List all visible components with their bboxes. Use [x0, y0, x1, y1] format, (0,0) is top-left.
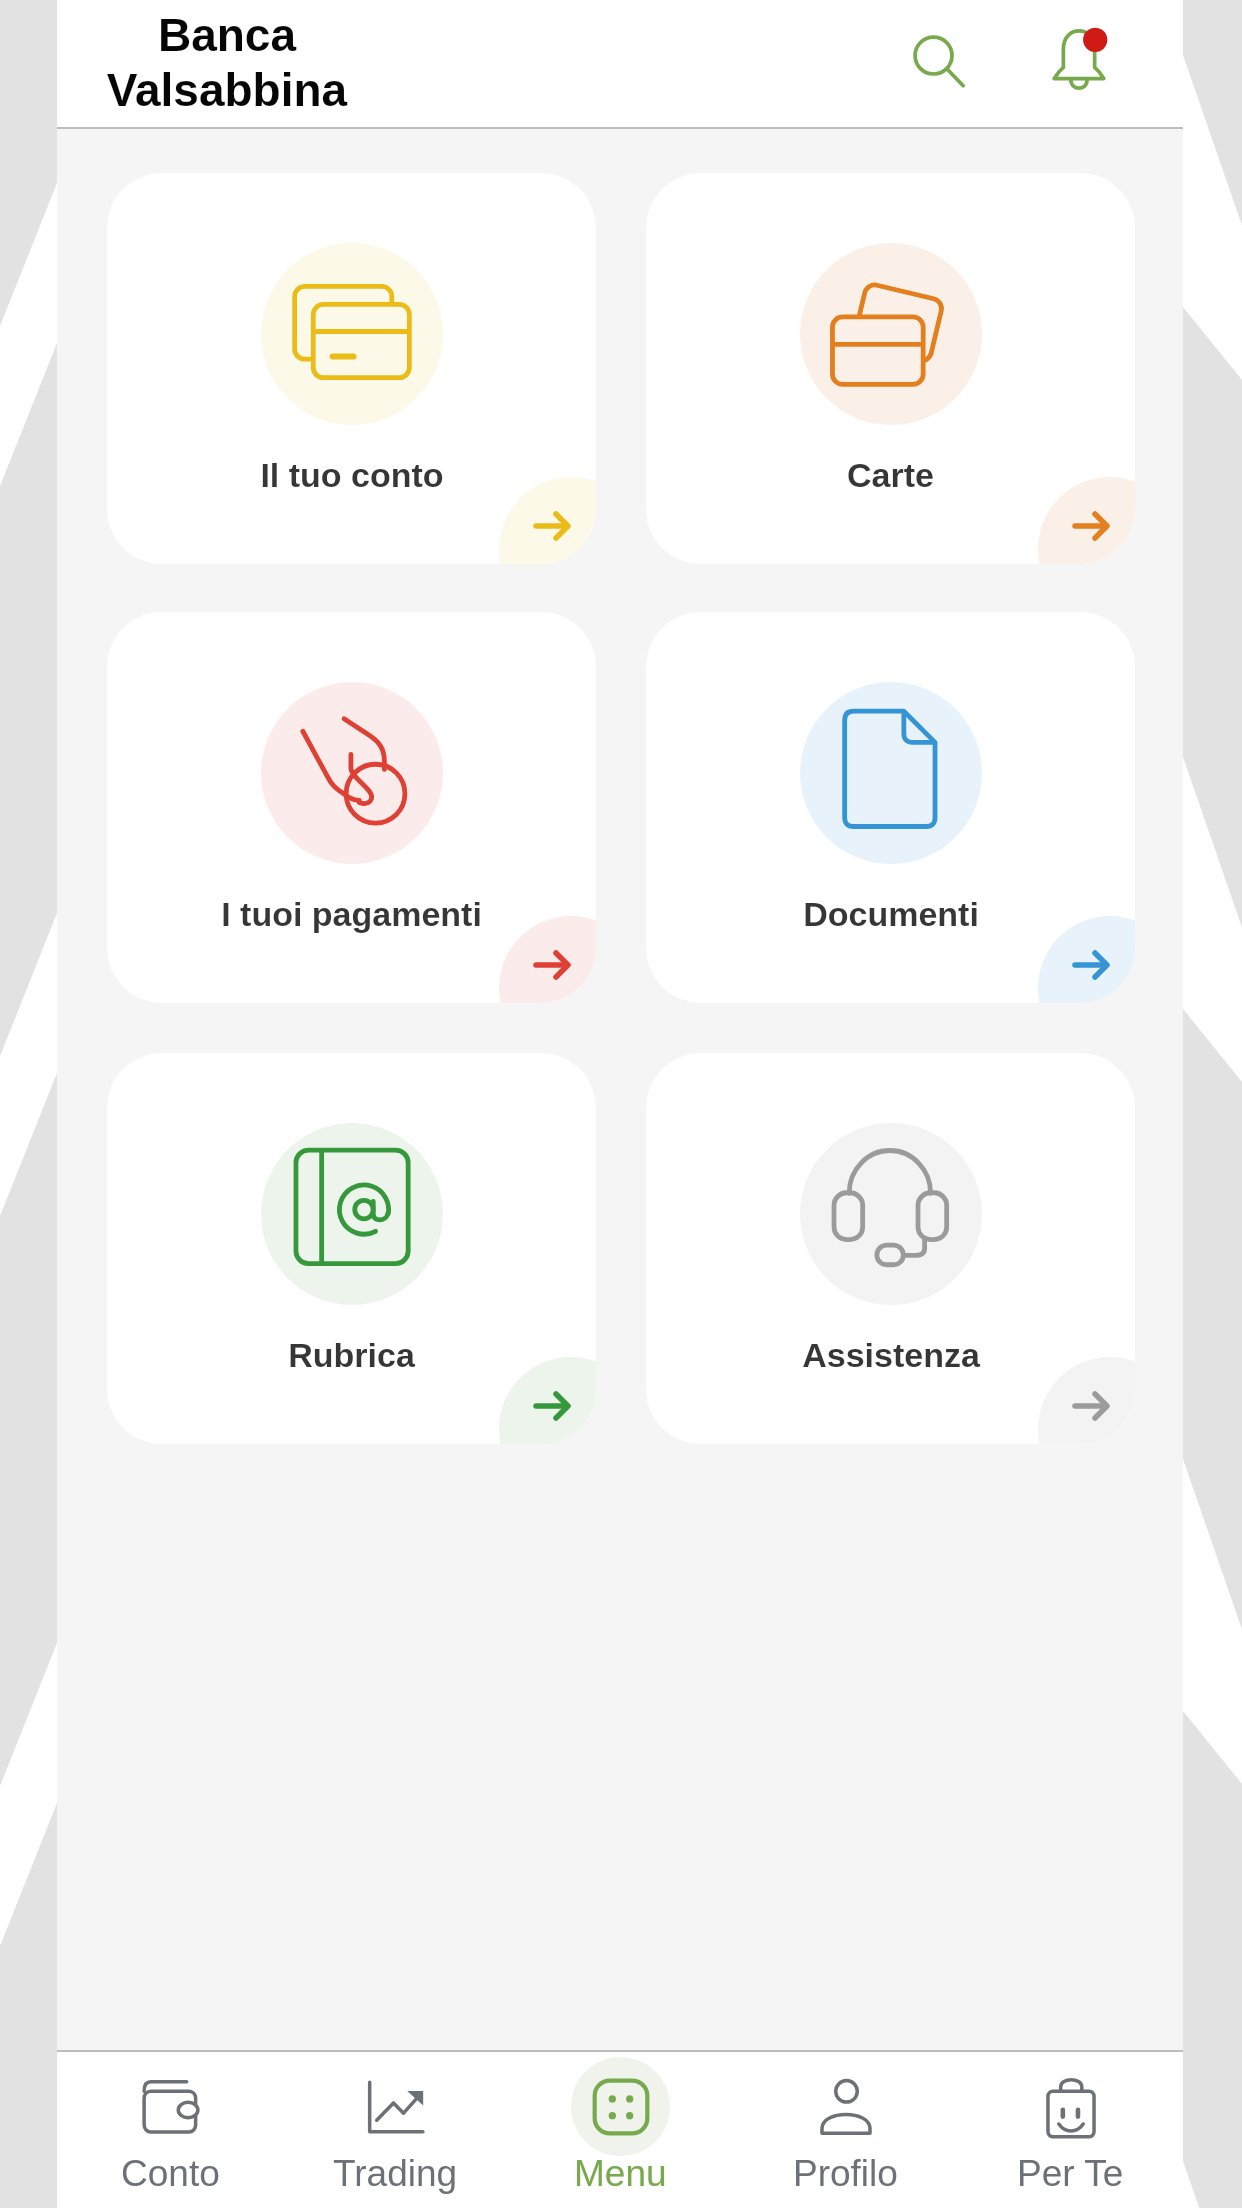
button[interactable]: Conto [57, 2052, 283, 2208]
staticText: Conto [121, 2153, 220, 2194]
button[interactable]: Profilo [733, 2052, 958, 2208]
button[interactable]: Documenti [646, 612, 1135, 1003]
button[interactable]: Trading [283, 2052, 508, 2208]
staticText: I tuoi pagamenti [221, 895, 482, 933]
button[interactable]: Rubrica [107, 1053, 596, 1444]
button[interactable]: I tuoi pagamenti [107, 612, 596, 1003]
staticText: Per Te [1017, 2153, 1124, 2194]
staticText: Il tuo conto [260, 456, 444, 494]
button[interactable]: Per Te [958, 2052, 1183, 2208]
button[interactable]: Assistenza [646, 1053, 1135, 1444]
staticText: Profilo [793, 2153, 898, 2194]
button[interactable]: Notifiche [1019, 0, 1139, 120]
staticText: Rubrica [288, 1336, 415, 1374]
staticText: Trading [333, 2153, 458, 2194]
staticText: Documenti [803, 895, 979, 933]
staticText: Carte [847, 456, 934, 494]
staticText: Assistenza [802, 1336, 980, 1374]
staticText: Menu [574, 2153, 667, 2194]
button[interactable]: Il tuo conto [107, 173, 596, 564]
staticText: Banca Valsabbina [102, 9, 352, 116]
button[interactable]: Menu [508, 2052, 733, 2208]
button[interactable]: Carte [646, 173, 1135, 564]
button[interactable]: Cerca [879, 1, 999, 121]
